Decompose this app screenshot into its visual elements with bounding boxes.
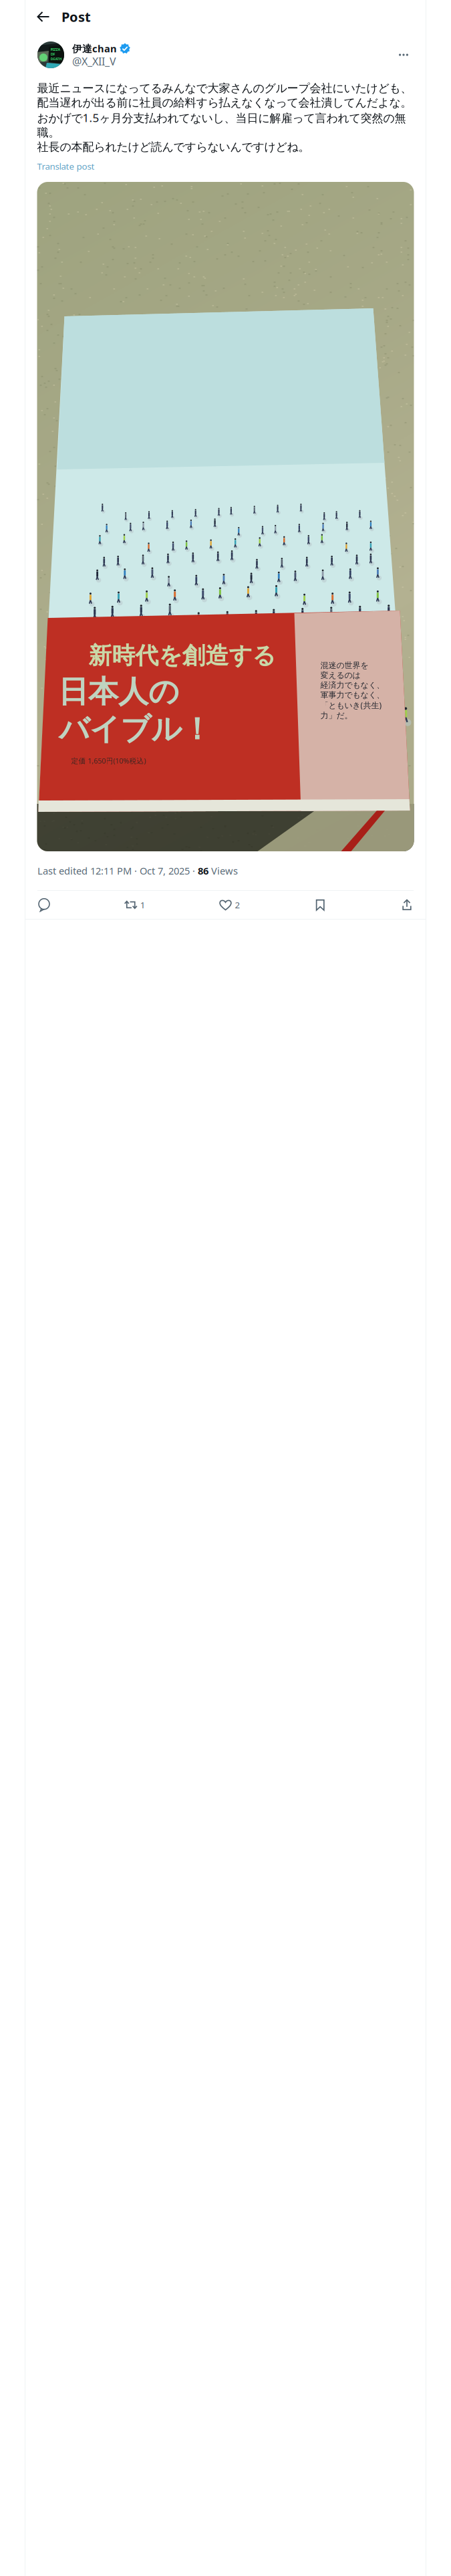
staticText: @X_XII_V	[72, 54, 116, 68]
staticText: Translate post	[37, 160, 95, 172]
staticText: バイブル！	[59, 711, 212, 748]
button[interactable]: Like	[219, 898, 240, 911]
staticText: PIZZA OF DEATH	[50, 47, 62, 61]
button[interactable]: Repost	[124, 898, 146, 911]
staticText: 2	[235, 899, 240, 911]
staticText: 1	[140, 899, 146, 911]
staticText: Post	[61, 8, 91, 26]
button[interactable]: More	[394, 45, 414, 65]
staticText: 定価 1,650円(10%税込)	[71, 756, 146, 765]
staticText: 最近ニュースになってるみんなで大家さんのグループ会社にいたけども、 配当遅れが出…	[37, 81, 412, 154]
staticText: 主義	[272, 677, 326, 711]
staticText: 86	[198, 864, 208, 877]
staticText: 伊達chan	[72, 42, 117, 55]
staticText: Views	[208, 864, 238, 877]
button[interactable]: Reply	[37, 898, 51, 911]
staticText: 日本から世界を変える	[145, 658, 246, 670]
button[interactable]: Translate post	[37, 159, 414, 173]
staticText: 日本人の	[58, 673, 179, 710]
staticText: Masataka Yanase	[96, 797, 155, 807]
staticText: ともいき	[93, 677, 205, 711]
staticText: 新時代を創造する	[89, 641, 276, 670]
staticText: 資本主義、共産主義を超えて 真に幸福で豊かな社会をつくるための 思想と実践	[104, 717, 275, 753]
button[interactable]: Share	[400, 898, 414, 911]
button[interactable]: Back	[25, 0, 61, 33]
staticText: Last edited 12:11 PM · Oct 7, 2025 ·	[37, 864, 198, 877]
staticText: 混迷の世界を 変えるのは 経済力でもなく、 軍事力でもなく、 「ともいき(共生)…	[320, 661, 385, 720]
button[interactable]: Bookmark	[313, 898, 327, 911]
